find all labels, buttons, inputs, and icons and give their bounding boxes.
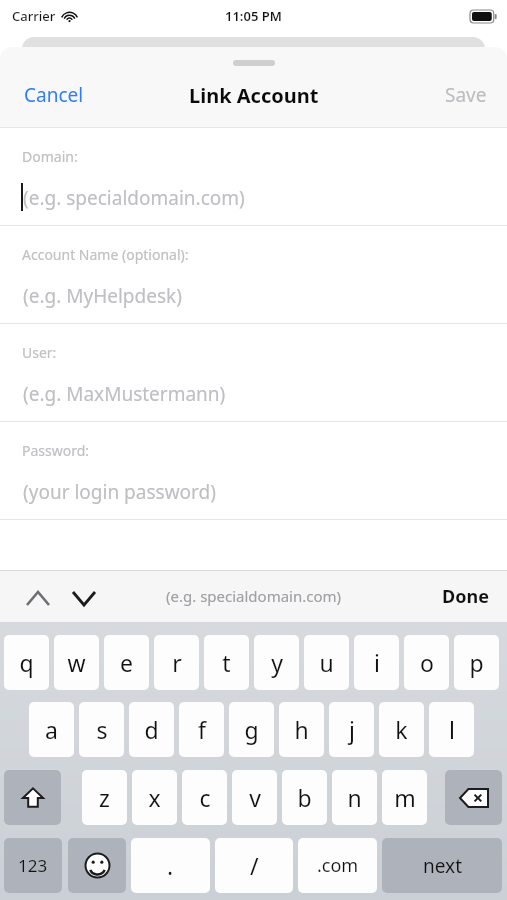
- button[interactable]: v: [232, 770, 277, 825]
- button[interactable]: g: [229, 702, 274, 757]
- staticText: f: [198, 714, 206, 745]
- button[interactable]: a: [29, 702, 74, 757]
- staticText: z: [99, 782, 110, 813]
- staticText: n: [347, 782, 362, 813]
- staticText: h: [294, 714, 309, 745]
- button[interactable]: Account Name (optional):: [0, 226, 507, 323]
- staticText: j: [349, 714, 355, 745]
- button[interactable]: Shift: [4, 770, 61, 825]
- staticText: g: [244, 714, 259, 745]
- button[interactable]: d: [129, 702, 174, 757]
- staticText: c: [199, 782, 211, 813]
- button[interactable]: next: [382, 838, 502, 893]
- staticText: (e.g. specialdomain.com): [166, 586, 342, 606]
- staticText: i: [374, 647, 380, 678]
- button[interactable]: u: [304, 635, 349, 690]
- staticText: w: [67, 647, 86, 678]
- button[interactable]: p: [454, 635, 499, 690]
- staticText: /: [250, 850, 259, 881]
- button[interactable]: .: [131, 838, 210, 893]
- staticText: y: [271, 647, 283, 678]
- button[interactable]: o: [404, 635, 449, 690]
- staticText: b: [297, 782, 312, 813]
- staticText: s: [96, 714, 108, 745]
- button[interactable]: Emoji: [68, 838, 126, 893]
- staticText: next: [423, 853, 462, 879]
- staticText: o: [420, 647, 434, 678]
- staticText: x: [148, 782, 161, 813]
- staticText: Link Account: [189, 82, 319, 109]
- staticText: .com: [317, 853, 359, 878]
- button[interactable]: n: [332, 770, 377, 825]
- staticText: u: [319, 647, 334, 678]
- button[interactable]: Save: [425, 72, 507, 118]
- button[interactable]: x: [132, 770, 177, 825]
- button[interactable]: c: [182, 770, 227, 825]
- button[interactable]: l: [429, 702, 474, 757]
- staticText: Save: [445, 82, 487, 108]
- button[interactable]: Domain:: [0, 128, 507, 225]
- button[interactable]: m: [382, 770, 427, 825]
- button[interactable]: j: [329, 702, 374, 757]
- staticText: t: [222, 647, 231, 678]
- staticText: d: [144, 714, 159, 745]
- button[interactable]: 123: [4, 838, 62, 893]
- button[interactable]: f: [179, 702, 224, 757]
- staticText: (e.g. specialdomain.com): [23, 185, 245, 211]
- button[interactable]: Previous field: [18, 578, 58, 618]
- button[interactable]: h: [279, 702, 324, 757]
- staticText: User:: [22, 343, 57, 362]
- button[interactable]: q: [4, 635, 49, 690]
- staticText: (e.g. MaxMustermann): [23, 381, 226, 407]
- button[interactable]: y: [254, 635, 299, 690]
- button[interactable]: Backspace: [445, 770, 502, 825]
- staticText: e: [120, 647, 133, 678]
- staticText: v: [249, 782, 261, 813]
- staticText: Account Name (optional):: [22, 245, 189, 264]
- button[interactable]: k: [379, 702, 424, 757]
- staticText: (your login password): [23, 479, 216, 505]
- staticText: Domain:: [22, 147, 78, 166]
- staticText: Cancel: [24, 82, 84, 108]
- button[interactable]: r: [154, 635, 199, 690]
- button[interactable]: i: [354, 635, 399, 690]
- staticText: a: [45, 714, 58, 745]
- staticText: Password:: [22, 441, 90, 460]
- button[interactable]: s: [79, 702, 124, 757]
- staticText: q: [19, 647, 34, 678]
- button[interactable]: /: [215, 838, 293, 893]
- button[interactable]: User:: [0, 324, 507, 421]
- button[interactable]: b: [282, 770, 327, 825]
- staticText: Done: [442, 584, 489, 609]
- button[interactable]: .com: [298, 838, 377, 893]
- staticText: p: [469, 647, 484, 678]
- staticText: r: [172, 647, 182, 678]
- staticText: l: [449, 714, 455, 745]
- staticText: m: [394, 782, 416, 813]
- staticText: 123: [18, 854, 48, 877]
- staticText: 11:05 PM: [225, 7, 282, 25]
- staticText: k: [395, 714, 408, 745]
- staticText: (e.g. MyHelpdesk): [23, 283, 182, 309]
- button[interactable]: e: [104, 635, 149, 690]
- button[interactable]: t: [204, 635, 249, 690]
- button[interactable]: w: [54, 635, 99, 690]
- button[interactable]: Next field: [64, 578, 104, 618]
- staticText: .: [167, 850, 174, 881]
- button[interactable]: Password:: [0, 422, 507, 519]
- button[interactable]: Cancel: [0, 72, 108, 118]
- staticText: Carrier: [12, 7, 56, 25]
- button[interactable]: Done: [424, 574, 507, 619]
- button[interactable]: z: [82, 770, 127, 825]
